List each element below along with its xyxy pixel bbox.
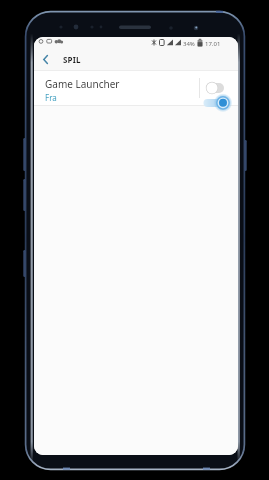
button[interactable]: SPIL bbox=[34, 48, 238, 70]
staticText: SPIL bbox=[63, 54, 81, 65]
button[interactable]: Game Launcher bbox=[34, 71, 238, 105]
staticText: 34% bbox=[183, 40, 195, 48]
staticText: 17.01 bbox=[205, 40, 221, 48]
staticText: Game Launcher bbox=[45, 77, 120, 91]
staticText: Fra bbox=[45, 92, 57, 103]
